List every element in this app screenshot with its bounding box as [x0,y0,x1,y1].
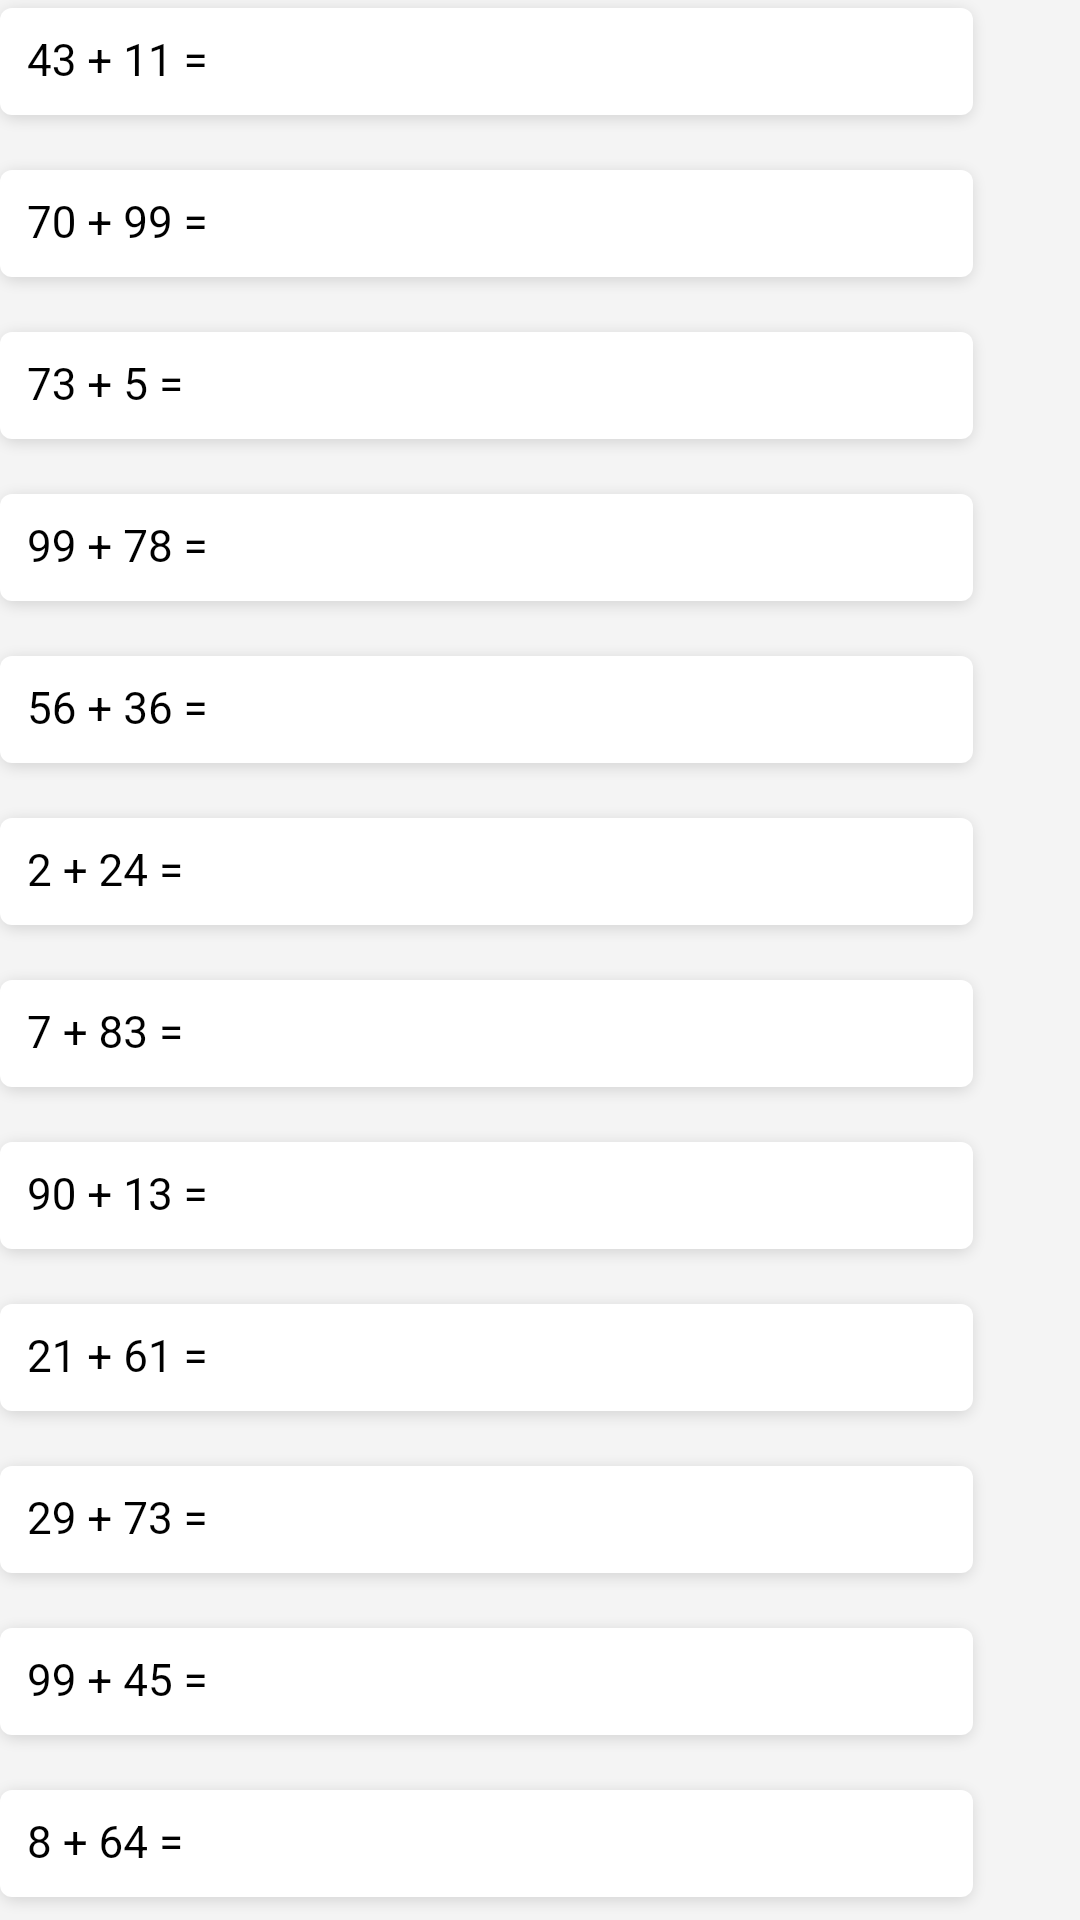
button[interactable]: 2 + 24 = [0,818,973,925]
button[interactable]: 90 + 13 = [0,1142,973,1249]
staticText: 99 + 45 = [27,1655,208,1707]
button[interactable]: 56 + 36 = [0,656,973,763]
button[interactable]: 8 + 64 = [0,1790,973,1897]
staticText: 8 + 64 = [27,1817,184,1869]
staticText: 70 + 99 = [27,197,208,249]
button[interactable]: 73 + 5 = [0,332,973,439]
button[interactable]: 99 + 45 = [0,1628,973,1735]
staticText: 43 + 11 = [27,35,208,87]
button[interactable]: 21 + 61 = [0,1304,973,1411]
staticText: 73 + 5 = [27,359,184,411]
button[interactable]: 70 + 99 = [0,170,973,277]
staticText: 90 + 13 = [27,1169,208,1221]
staticText: 99 + 78 = [27,521,208,573]
staticText: 56 + 36 = [27,683,208,735]
staticText: 7 + 83 = [27,1007,184,1059]
staticText: 29 + 73 = [27,1493,208,1545]
staticText: 21 + 61 = [27,1331,208,1383]
button[interactable]: 99 + 78 = [0,494,973,601]
button[interactable]: 7 + 83 = [0,980,973,1087]
button[interactable]: 29 + 73 = [0,1466,973,1573]
staticText: 2 + 24 = [27,845,184,897]
button[interactable]: 43 + 11 = [0,8,973,115]
